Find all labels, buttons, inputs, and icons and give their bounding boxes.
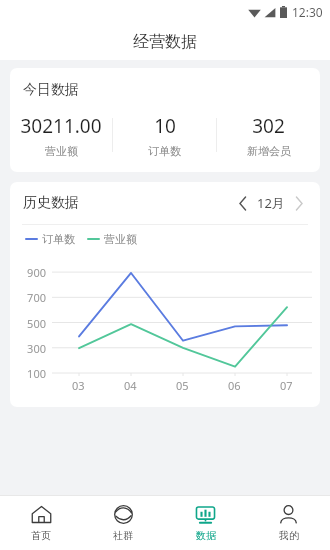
button[interactable]: Previous month — [232, 192, 254, 214]
staticText: 30211.00 — [20, 113, 102, 139]
staticText: 订单数 — [42, 232, 75, 246]
staticText: 社群 — [113, 529, 133, 542]
staticText: 新增会员 — [247, 144, 291, 157]
button[interactable]: 社群 — [82, 496, 164, 550]
staticText: 03 — [72, 378, 85, 393]
staticText: 今日数据 — [23, 81, 79, 99]
staticText: 营业额 — [104, 232, 137, 246]
button[interactable]: 数据 — [164, 496, 247, 550]
staticText: 07 — [280, 378, 293, 393]
staticText: 我的 — [279, 529, 299, 542]
button[interactable]: Next month — [288, 192, 310, 214]
staticText: 04 — [124, 378, 137, 393]
staticText: 经营数据 — [133, 32, 197, 52]
button[interactable]: 我的 — [247, 496, 330, 550]
staticText: 订单数 — [148, 144, 181, 157]
staticText: 10 — [154, 113, 176, 139]
staticText: 12:30 — [292, 4, 323, 20]
staticText: 12月 — [257, 194, 285, 212]
staticText: 500 — [27, 316, 46, 331]
staticText: 数据 — [196, 529, 216, 542]
staticText: 900 — [27, 265, 46, 280]
staticText: 首页 — [31, 529, 51, 542]
staticText: 历史数据 — [23, 194, 79, 212]
staticText: 06 — [228, 378, 241, 393]
staticText: 05 — [176, 378, 189, 393]
staticText: 300 — [27, 341, 46, 356]
button[interactable]: 首页 — [0, 496, 82, 550]
staticText: 100 — [27, 366, 46, 381]
staticText: 700 — [27, 290, 46, 305]
staticText: 营业额 — [45, 144, 78, 157]
staticText: 302 — [252, 113, 285, 139]
